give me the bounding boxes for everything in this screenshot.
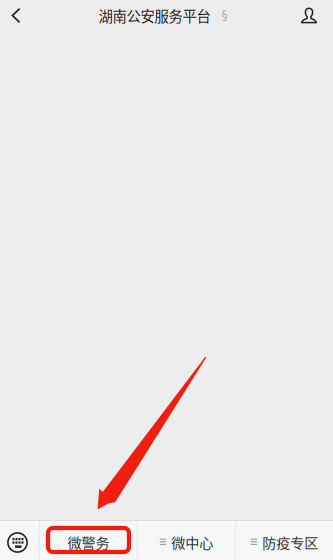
button[interactable]: 微中心	[138, 521, 235, 560]
button[interactable]: 防疫专区	[236, 521, 333, 560]
staticText: §	[221, 8, 227, 22]
staticText: 防疫专区	[262, 532, 318, 552]
staticText: 微中心	[171, 532, 213, 552]
button[interactable]: Contact	[285, 0, 333, 31]
staticText: 微警务	[67, 532, 109, 552]
staticText: 湖南公安服务平台	[98, 5, 210, 26]
button[interactable]: Back	[0, 0, 32, 31]
button[interactable]: 微警务	[40, 521, 137, 560]
button[interactable]: Keyboard	[0, 521, 39, 560]
